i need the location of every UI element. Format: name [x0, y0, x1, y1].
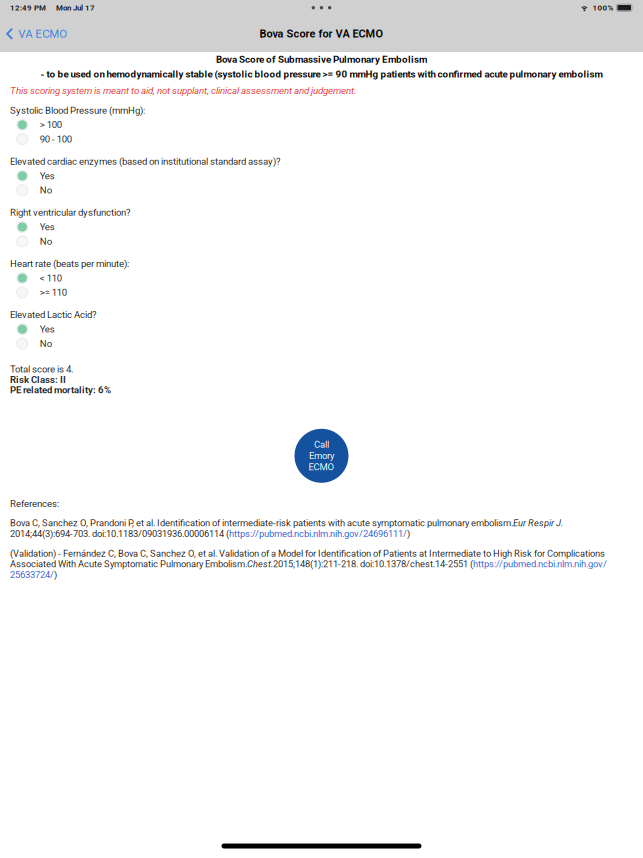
button[interactable]: Yes [0, 220, 643, 234]
staticText: Bova Score of Submassive Pulmonary Embol… [216, 54, 427, 65]
staticText: Mon Jul 17 [56, 3, 95, 12]
staticText: Elevated cardiac enzymes (based on insti… [10, 156, 281, 167]
button[interactable]: No [0, 336, 643, 351]
staticText: PE related mortality: 6% [10, 384, 111, 396]
staticText: Total score is 4. [10, 364, 74, 375]
staticText: Call [314, 439, 329, 450]
staticText: Bova C, Sanchez O, Prandoni P, et al. Id… [10, 518, 563, 539]
staticText: Right ventricular dysfunction? [10, 207, 131, 218]
button[interactable]: No [0, 183, 643, 197]
staticText: VA ECMO [18, 27, 67, 40]
staticText: (Validation) - Fernández C, Bova C, Sanc… [10, 548, 607, 580]
staticText: 100% [592, 3, 613, 12]
staticText: Systolic Blood Pressure (mmHg): [10, 105, 145, 116]
staticText: No [40, 338, 52, 349]
button[interactable]: Yes [0, 169, 643, 183]
staticText: Emory [309, 450, 334, 461]
staticText: 12:49 PM [10, 3, 46, 12]
staticText: Bova Score for VA ECMO [259, 27, 383, 40]
staticText: 90 - 100 [40, 134, 72, 145]
staticText: Elevated Lactic Acid? [10, 309, 97, 320]
staticText: Heart rate (beats per minute): [10, 258, 129, 269]
button[interactable]: Yes [0, 322, 643, 336]
staticText: ECMO [308, 461, 334, 473]
staticText: Risk Class: II [10, 374, 66, 385]
button[interactable]: Call [294, 429, 348, 483]
staticText: No [40, 236, 52, 247]
staticText: >= 110 [40, 287, 67, 298]
staticText: Yes [40, 170, 55, 182]
button[interactable]: 90 - 100 [0, 132, 643, 146]
staticText: References: [10, 498, 59, 509]
button[interactable]: No [0, 234, 643, 249]
staticText: > 100 [40, 119, 62, 130]
staticText: No [40, 185, 52, 196]
button[interactable]: >= 110 [0, 285, 643, 300]
staticText: - to be used on hemodynamically stable (… [40, 68, 602, 80]
staticText: Yes [40, 221, 55, 233]
staticText: < 110 [40, 272, 62, 284]
button[interactable]: < 110 [0, 271, 643, 285]
staticText: Yes [40, 324, 55, 335]
staticText: This scoring system is meant to aid, not… [10, 85, 356, 96]
button[interactable]: VA ECMO [0, 22, 75, 45]
button[interactable]: > 100 [0, 118, 643, 132]
